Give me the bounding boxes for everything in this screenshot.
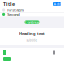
- button[interactable]: First item: [0, 8, 64, 12]
- button[interactable]: Continue: [24, 20, 39, 24]
- button[interactable]: Second: [0, 12, 64, 16]
- button[interactable]: Add: [53, 2, 61, 6]
- button[interactable]: [3, 57, 11, 61]
- staticText: Title: [3, 0, 15, 8]
- staticText: Second: [7, 12, 19, 17]
- staticText: Continue: [24, 19, 39, 25]
- staticText: Heading text: [19, 31, 45, 36]
- staticText: First item: [7, 7, 24, 13]
- staticText: subtitle: [26, 39, 37, 42]
- staticText: Add: [53, 1, 60, 7]
